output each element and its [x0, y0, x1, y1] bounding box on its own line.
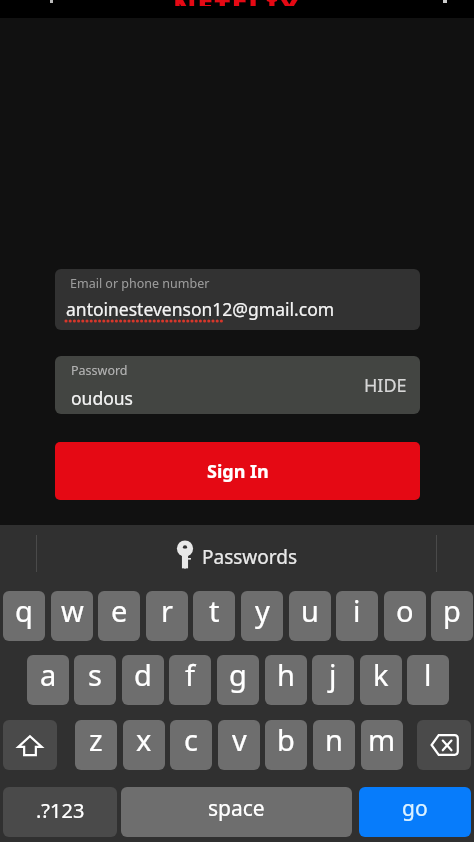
- button[interactable]: e: [98, 591, 140, 641]
- button[interactable]: d: [122, 655, 164, 705]
- staticText: NETFLIX: [173, 0, 301, 6]
- staticText: Sign In: [207, 459, 269, 484]
- button[interactable]: b: [265, 720, 307, 770]
- button[interactable]: h: [265, 655, 307, 705]
- staticText: n: [325, 720, 343, 759]
- staticText: f: [185, 655, 195, 694]
- staticText: Email or phone number: [70, 275, 210, 292]
- staticText: z: [89, 720, 103, 759]
- staticText: space: [208, 794, 265, 823]
- staticText: a: [40, 655, 57, 694]
- button[interactable]: i: [336, 591, 378, 641]
- button[interactable]: r: [146, 591, 188, 641]
- button[interactable]: x: [123, 720, 165, 770]
- staticText: k: [373, 655, 389, 694]
- button[interactable]: s: [74, 655, 116, 705]
- staticText: i: [353, 591, 361, 630]
- staticText: p: [443, 591, 461, 630]
- staticText: g: [229, 655, 247, 694]
- button[interactable]: m: [361, 720, 403, 770]
- staticText: h: [277, 655, 295, 694]
- staticText: q: [15, 591, 33, 630]
- staticText: antoinestevenson12@gmail.com: [66, 297, 335, 321]
- staticText: e: [111, 591, 128, 630]
- staticText: .?123: [36, 797, 85, 824]
- button[interactable]: o: [384, 591, 426, 641]
- staticText: m: [368, 720, 396, 759]
- staticText: u: [301, 591, 319, 630]
- button[interactable]: a: [27, 655, 69, 705]
- staticText: c: [184, 720, 198, 759]
- staticText: j: [329, 655, 337, 694]
- button[interactable]: z: [75, 720, 117, 770]
- button[interactable]: Password: [55, 356, 420, 414]
- staticText: b: [277, 720, 295, 759]
- button[interactable]: Sign In: [55, 442, 420, 500]
- button[interactable]: n: [313, 720, 355, 770]
- staticText: go: [402, 794, 428, 823]
- button[interactable]: u: [289, 591, 331, 641]
- staticText: Password: [71, 362, 128, 379]
- staticText: t: [209, 591, 220, 630]
- button[interactable]: t: [193, 591, 235, 641]
- staticText: y: [255, 591, 270, 630]
- button[interactable]: g: [217, 655, 259, 705]
- staticText: o: [396, 591, 414, 630]
- staticText: l: [424, 655, 432, 694]
- staticText: s: [88, 655, 102, 694]
- button[interactable]: go: [359, 787, 471, 837]
- button[interactable]: y: [241, 591, 283, 641]
- button[interactable]: l: [407, 655, 449, 705]
- staticText: x: [136, 720, 152, 759]
- button[interactable]: j: [312, 655, 354, 705]
- button[interactable]: p: [431, 591, 473, 641]
- staticText: oudous: [71, 386, 133, 410]
- button[interactable]: Passwords: [176, 540, 298, 570]
- button[interactable]: c: [170, 720, 212, 770]
- button[interactable]: f: [169, 655, 211, 705]
- button[interactable]: w: [51, 591, 93, 641]
- button[interactable]: Backspace: [417, 720, 471, 770]
- button[interactable]: q: [3, 591, 45, 641]
- button[interactable]: k: [360, 655, 402, 705]
- staticText: r: [161, 591, 173, 630]
- staticText: v: [232, 720, 247, 759]
- staticText: w: [61, 591, 84, 630]
- staticText: d: [134, 655, 152, 694]
- button[interactable]: HIDE: [364, 356, 407, 414]
- staticText: HIDE: [364, 373, 407, 398]
- button[interactable]: .?123: [3, 787, 117, 837]
- button[interactable]: Email or phone number: [55, 269, 420, 330]
- button[interactable]: v: [218, 720, 260, 770]
- button[interactable]: Shift: [3, 720, 57, 770]
- button[interactable]: space: [121, 787, 352, 837]
- staticText: Passwords: [202, 544, 298, 570]
